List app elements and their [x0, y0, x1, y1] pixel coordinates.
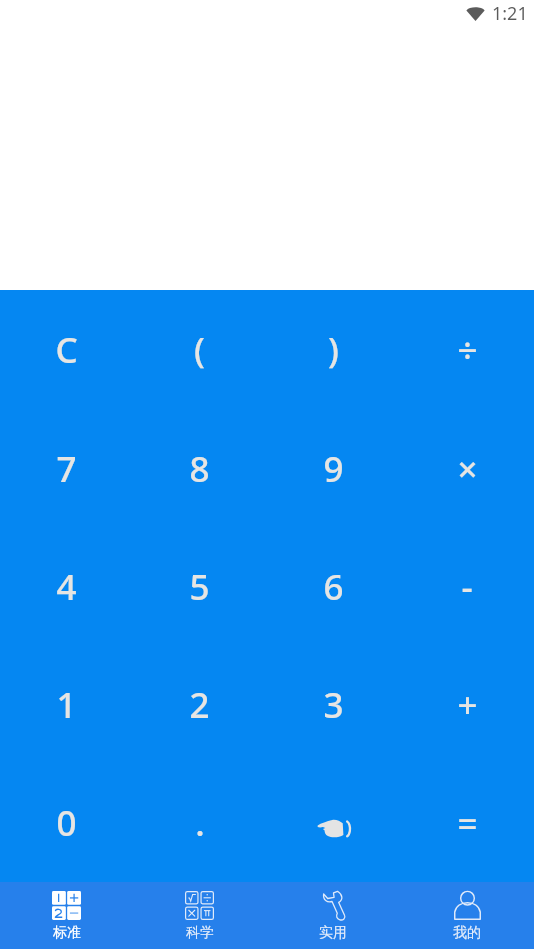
staticText: 7 [56, 445, 77, 493]
staticText: × [457, 445, 478, 493]
staticText: 实用 [319, 924, 347, 942]
button[interactable]: + [400, 646, 534, 764]
staticText: 1:21 [492, 1, 528, 26]
button[interactable]: = [400, 764, 534, 882]
button[interactable]: 0 [0, 764, 133, 882]
button[interactable]: Backspace [266, 764, 400, 882]
button[interactable]: 5 [133, 528, 266, 646]
button[interactable]: ) [266, 290, 400, 409]
button[interactable]: 实用 [266, 882, 400, 949]
staticText: . [195, 799, 205, 847]
staticText: 1 [56, 681, 77, 729]
staticText: 科学 [186, 924, 214, 942]
button[interactable]: 1 [0, 646, 133, 764]
staticText: 标准 [53, 924, 81, 942]
staticText: 9 [323, 445, 344, 493]
button[interactable]: - [400, 528, 534, 646]
staticText: = [457, 799, 478, 847]
staticText: 8 [189, 445, 210, 493]
staticText: ( [194, 326, 205, 374]
staticText: 我的 [453, 924, 481, 942]
button[interactable]: ( [133, 290, 266, 409]
staticText: 5 [189, 563, 210, 611]
staticText: ) [328, 326, 339, 374]
staticText: 0 [56, 799, 77, 847]
staticText: 2 [189, 681, 210, 729]
staticText: 3 [323, 681, 344, 729]
button[interactable]: 科学 [133, 882, 266, 949]
staticText: - [461, 563, 473, 611]
button[interactable]: 9 [266, 409, 400, 528]
button[interactable]: 8 [133, 409, 266, 528]
button[interactable]: . [133, 764, 266, 882]
staticText: 6 [323, 563, 344, 611]
button[interactable]: C [0, 290, 133, 409]
staticText: C [55, 326, 78, 374]
button[interactable]: 我的 [400, 882, 534, 949]
button[interactable]: 2 [133, 646, 266, 764]
button[interactable]: 6 [266, 528, 400, 646]
button[interactable]: ÷ [400, 290, 534, 409]
button[interactable]: 7 [0, 409, 133, 528]
button[interactable]: 标准 [0, 882, 133, 949]
button[interactable]: 3 [266, 646, 400, 764]
staticText: + [457, 681, 478, 729]
staticText: ÷ [457, 326, 478, 374]
button[interactable]: × [400, 409, 534, 528]
button[interactable]: 4 [0, 528, 133, 646]
staticText: 4 [56, 563, 77, 611]
